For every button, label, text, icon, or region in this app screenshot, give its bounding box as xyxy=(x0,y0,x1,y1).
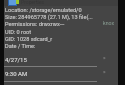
button[interactable]: Select date xyxy=(4,52,118,67)
button[interactable]: Select time xyxy=(4,66,118,82)
staticText: » xyxy=(103,69,106,75)
staticText: 9:30 AM xyxy=(5,70,28,77)
staticText: » xyxy=(103,55,106,61)
button[interactable]: Folder properties xyxy=(4,0,118,6)
staticText: Size: 284965778 (27.1 M), 13 file(... xyxy=(5,14,93,21)
staticText: 4/27/15 xyxy=(5,56,27,63)
staticText: GID: 1028 sdcard_r xyxy=(5,36,53,43)
staticText: Location: /storage/emulated/0 xyxy=(5,7,82,14)
staticText: UID: 0 root xyxy=(5,29,32,36)
staticText: Date / Time: xyxy=(5,43,36,50)
staticText: knox xyxy=(103,20,114,26)
staticText: Permissions: drwxrwx--- xyxy=(5,21,65,28)
